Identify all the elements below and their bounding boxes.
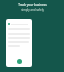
staticText: Track your business [18,3,47,7]
staticText: simply and safely [21,8,44,12]
button[interactable]: Continue [17,59,22,64]
